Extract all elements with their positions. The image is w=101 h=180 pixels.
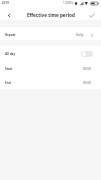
button[interactable]: Confirm xyxy=(86,8,101,20)
staticText: Repeat xyxy=(5,33,16,37)
staticText: Start xyxy=(5,67,13,71)
staticText: 00:00 xyxy=(83,81,91,85)
staticText: 00:00 xyxy=(83,67,91,71)
button[interactable]: End xyxy=(0,75,101,89)
button[interactable]: Repeat xyxy=(0,27,101,40)
staticText: Effective time period xyxy=(27,12,75,18)
staticText: End xyxy=(5,81,11,85)
button[interactable]: Start xyxy=(0,61,101,75)
staticText: Daily xyxy=(76,33,84,37)
staticText: All day xyxy=(5,52,16,56)
staticText: 22:19 xyxy=(2,1,9,5)
staticText: 1.00K/s xyxy=(63,1,74,5)
button[interactable]: All day xyxy=(0,46,101,61)
button[interactable]: Back xyxy=(0,8,18,20)
